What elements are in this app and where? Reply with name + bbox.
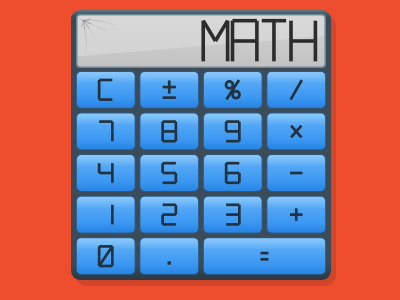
button[interactable]: Four: [76, 154, 136, 192]
button[interactable]: Plus: [267, 196, 327, 234]
button[interactable]: Multiply: [267, 113, 327, 151]
button[interactable]: Decimal point: [140, 237, 200, 275]
button[interactable]: Percent: [203, 71, 263, 109]
button[interactable]: Two: [140, 196, 200, 234]
button[interactable]: One: [76, 196, 136, 234]
button[interactable]: Five: [140, 154, 200, 192]
button[interactable]: Clear: [76, 71, 136, 109]
button[interactable]: Seven: [76, 113, 136, 151]
button[interactable]: Zero: [76, 237, 136, 275]
button[interactable]: Three: [203, 196, 263, 234]
button[interactable]: Six: [203, 154, 263, 192]
button[interactable]: Eight: [140, 113, 200, 151]
button[interactable]: Minus: [267, 154, 327, 192]
button[interactable]: Equals: [203, 237, 326, 275]
button[interactable]: Plus minus: [140, 71, 200, 109]
button[interactable]: Divide: [267, 71, 327, 109]
button[interactable]: Nine: [203, 113, 263, 151]
